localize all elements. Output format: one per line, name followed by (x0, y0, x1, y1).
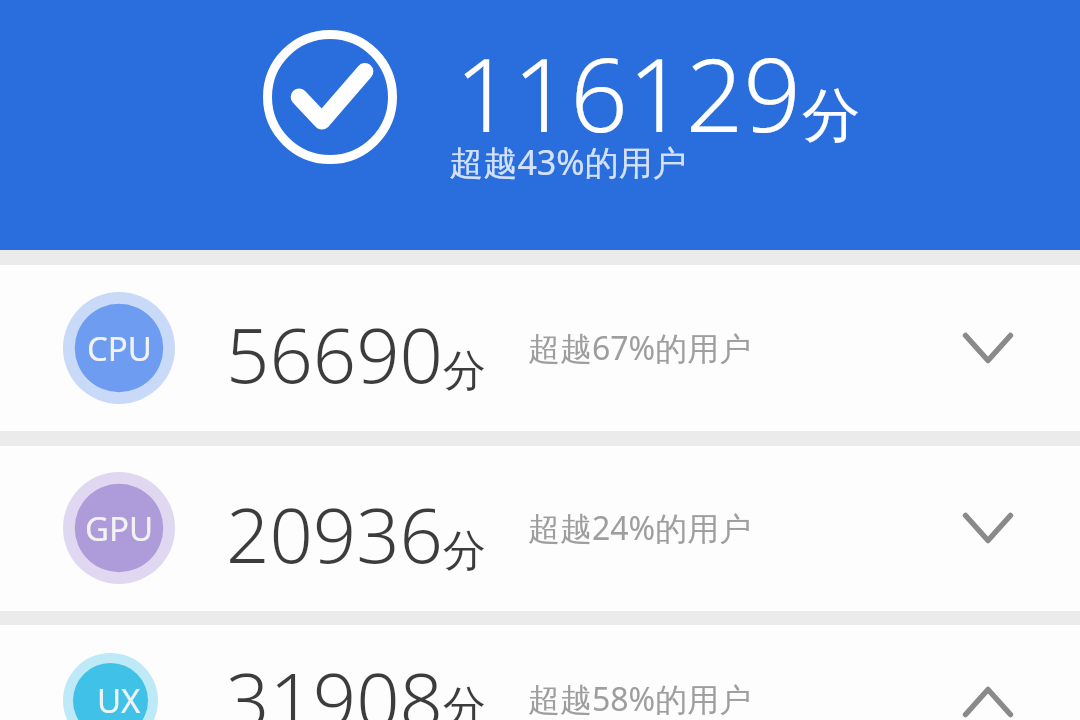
staticText: 超越67%的用户 (528, 326, 752, 370)
staticText: GPU (85, 506, 154, 551)
staticText: 超越58%的用户 (528, 677, 752, 720)
staticText: 分 (443, 524, 486, 578)
staticText: 超越24%的用户 (528, 506, 752, 550)
staticText: CPU (87, 326, 152, 371)
staticText: 116129 (455, 24, 802, 162)
staticText: 分 (443, 680, 486, 720)
button[interactable]: CPU (0, 265, 1080, 431)
button[interactable]: UX (0, 625, 1080, 720)
other: Benchmark complete (263, 30, 397, 164)
staticText: 分 (443, 344, 486, 398)
staticText: 超越43%的用户 (56, 139, 1080, 185)
staticText: 分 (802, 79, 860, 152)
staticText: 20936 (226, 482, 443, 586)
staticText: UX (97, 678, 141, 720)
staticText: 31908 (226, 647, 443, 720)
button[interactable]: Expand (955, 495, 1021, 561)
staticText: 56690 (226, 302, 443, 406)
button[interactable]: Expand (955, 315, 1021, 381)
button[interactable]: GPU (0, 446, 1080, 611)
button[interactable]: Collapse (955, 669, 1021, 720)
